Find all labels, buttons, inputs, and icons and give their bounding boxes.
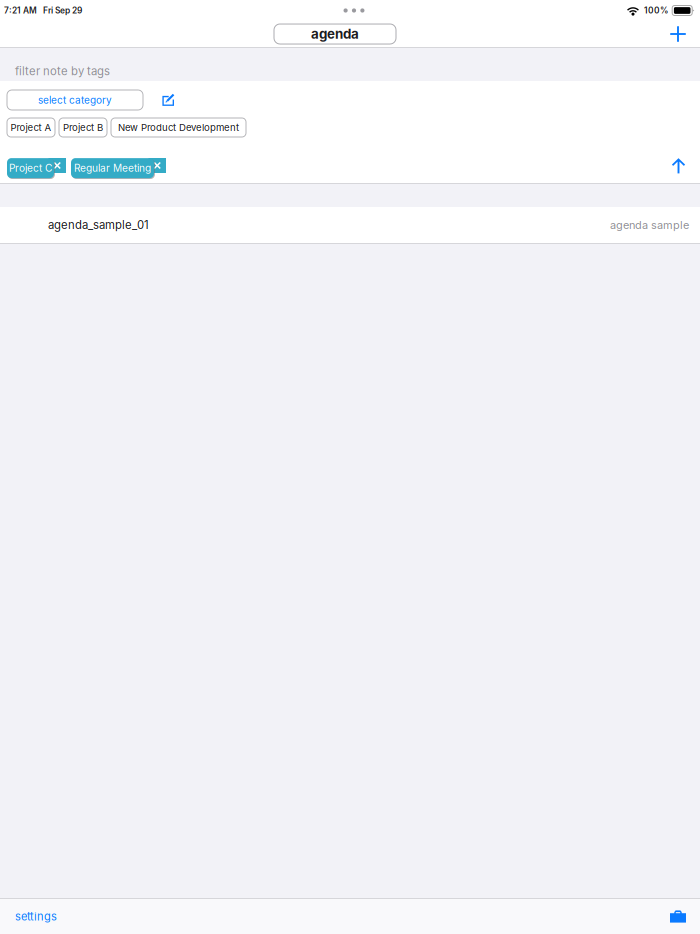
button[interactable]: New Product Development — [111, 118, 246, 137]
staticText: Regular Meeting — [74, 162, 151, 174]
button[interactable]: settings — [10, 903, 62, 930]
button[interactable]: Projects — [670, 910, 686, 923]
staticText: Project B — [63, 122, 103, 133]
staticText: filter note by tags — [15, 64, 110, 78]
staticText: Project C — [9, 162, 52, 174]
button[interactable]: agenda — [274, 24, 396, 44]
button[interactable]: Project C — [7, 157, 66, 178]
staticText: Fri Sep 29 — [43, 5, 82, 16]
staticText: 7:21 AM — [4, 5, 37, 16]
button[interactable]: Add — [670, 26, 686, 42]
staticText: 100% — [644, 5, 668, 16]
button[interactable]: select category — [7, 90, 143, 110]
button[interactable]: Project A — [7, 118, 55, 137]
staticText: agenda_sample_01 — [48, 218, 149, 232]
staticText: New Product Development — [118, 122, 239, 133]
staticText: settings — [15, 910, 57, 923]
button[interactable]: New note — [162, 93, 175, 106]
staticText: agenda — [311, 26, 359, 42]
staticText: Project A — [10, 122, 51, 133]
button[interactable]: Project B — [59, 118, 107, 137]
button[interactable]: agenda_sample_01 — [0, 207, 700, 243]
button[interactable]: Scroll to top — [671, 157, 686, 174]
staticText: select category — [38, 94, 112, 106]
button[interactable]: Regular Meeting — [71, 157, 166, 178]
staticText: agenda sample — [610, 218, 689, 232]
